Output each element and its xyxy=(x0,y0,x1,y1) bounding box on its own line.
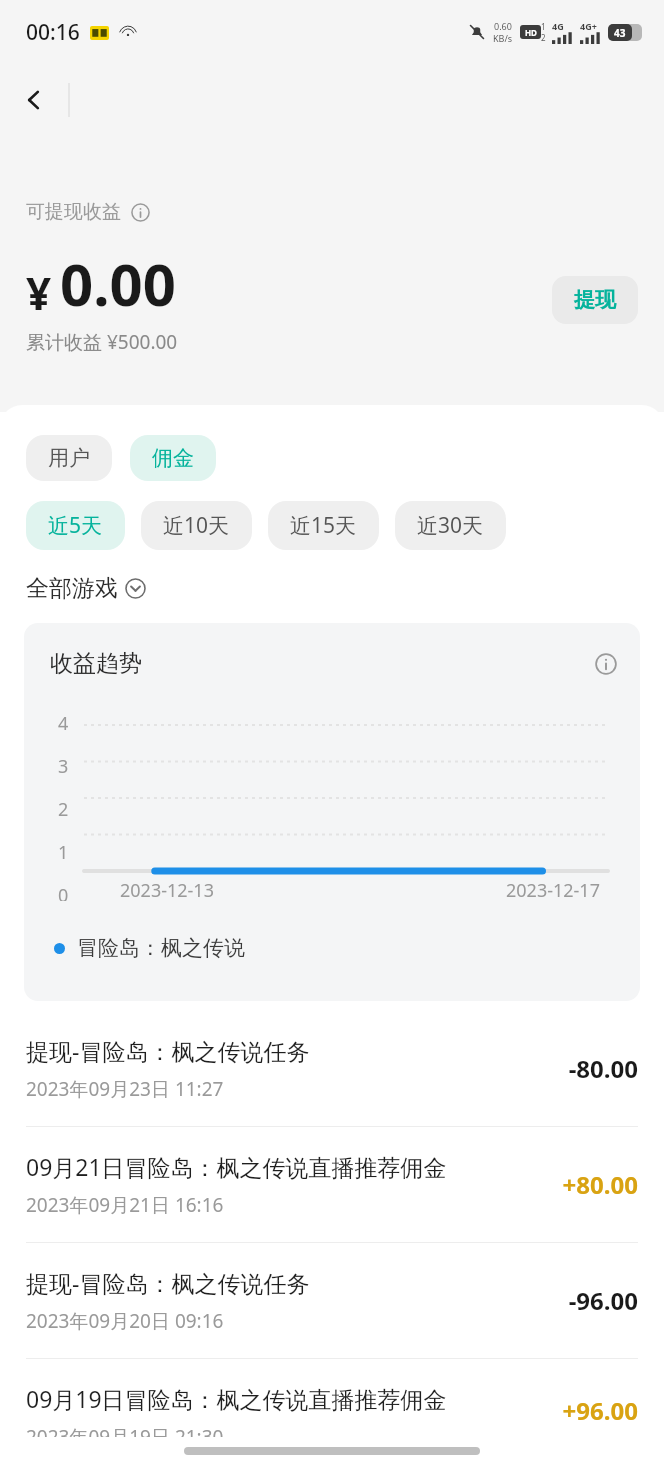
staticText: 2023年09月23日 11:27 xyxy=(26,1076,224,1102)
button[interactable]: 全部游戏 xyxy=(26,574,146,603)
staticText: 0.00 xyxy=(60,244,176,323)
button[interactable]: 09月19日冒险岛：枫之传说直播推荐佣金 xyxy=(0,1359,664,1461)
staticText: +80.00 xyxy=(562,1168,638,1201)
staticText: 用户 xyxy=(48,445,90,471)
staticText: 0.60 xyxy=(494,20,512,32)
staticText: 2023年09月19日 21:30 xyxy=(26,1424,224,1437)
button[interactable]: 近10天 xyxy=(141,501,252,550)
staticText: 近30天 xyxy=(417,511,484,540)
button[interactable]: 提现-冒险岛：枫之传说任务 xyxy=(0,1243,664,1358)
staticText: 2 xyxy=(58,797,69,822)
button[interactable]: Info xyxy=(129,201,151,223)
staticText: 近15天 xyxy=(290,511,357,540)
staticText: 提现-冒险岛：枫之传说任务 xyxy=(26,1035,310,1066)
staticText: 冒险岛：枫之传说 xyxy=(77,935,245,961)
staticText: 00:16 xyxy=(26,18,80,47)
staticText: 提现 xyxy=(574,287,616,313)
staticText: 累计收益 ¥500.00 xyxy=(26,329,178,355)
staticText: 09月21日冒险岛：枫之传说直播推荐佣金 xyxy=(26,1151,447,1182)
staticText: 全部游戏 xyxy=(26,574,118,603)
button[interactable]: 提现 xyxy=(552,276,638,324)
staticText: 可提现收益 xyxy=(26,200,121,224)
button[interactable]: 用户 xyxy=(26,435,112,481)
staticText: 近10天 xyxy=(163,511,230,540)
staticText: 佣金 xyxy=(152,445,194,471)
staticText: 2023-12-17 xyxy=(506,878,600,903)
staticText: -96.00 xyxy=(568,1284,638,1317)
staticText: 1 xyxy=(541,21,546,32)
staticText: 2023年09月20日 09:16 xyxy=(26,1308,224,1334)
staticText: 2 xyxy=(541,32,546,43)
staticText: 3 xyxy=(58,754,69,779)
staticText: ¥ xyxy=(26,263,52,323)
button[interactable]: 近30天 xyxy=(395,501,506,550)
button[interactable]: 提现-冒险岛：枫之传说任务 xyxy=(0,1011,664,1126)
staticText: 4G+ xyxy=(580,20,597,32)
staticText: -80.00 xyxy=(568,1052,638,1085)
staticText: HD xyxy=(525,27,537,38)
button[interactable]: 近15天 xyxy=(268,501,379,550)
button[interactable]: 佣金 xyxy=(130,435,216,481)
staticText: 近5天 xyxy=(48,511,103,540)
staticText: 09月19日冒险岛：枫之传说直播推荐佣金 xyxy=(26,1383,447,1414)
button[interactable]: 近5天 xyxy=(26,501,125,550)
staticText: +96.00 xyxy=(562,1394,638,1427)
staticText: 43 xyxy=(614,26,626,40)
button[interactable]: Back xyxy=(10,76,58,124)
staticText: 收益趋势 xyxy=(50,649,142,678)
button[interactable]: 09月21日冒险岛：枫之传说直播推荐佣金 xyxy=(0,1127,664,1242)
staticText: 4G xyxy=(552,20,564,32)
staticText: KB/s xyxy=(493,32,513,44)
staticText: 2023-12-13 xyxy=(120,878,214,903)
staticText: 2023年09月21日 16:16 xyxy=(26,1192,224,1218)
staticText: 4 xyxy=(58,711,69,736)
staticText: 0 xyxy=(58,883,69,901)
staticText: 提现-冒险岛：枫之传说任务 xyxy=(26,1267,310,1298)
staticText: 1 xyxy=(58,840,69,865)
button[interactable]: Chart info xyxy=(594,652,618,676)
